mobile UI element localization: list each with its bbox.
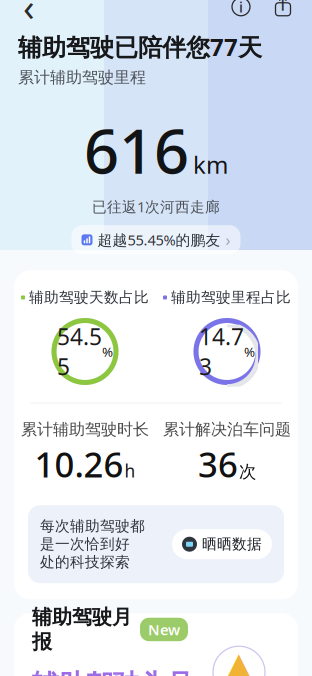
button[interactable]: Back: [12, 0, 46, 24]
staticText: ↑: [274, 0, 291, 15]
button[interactable]: 辅助驾驶月报: [0, 599, 312, 676]
staticText: 10.26: [34, 441, 123, 487]
staticText: 54.55: [57, 321, 102, 382]
staticText: 晒晒数据: [202, 535, 262, 553]
staticText: km: [193, 149, 228, 180]
staticText: New: [148, 620, 180, 639]
button[interactable]: Info: [224, 0, 258, 24]
staticText: ›: [225, 229, 230, 250]
staticText: 累计辅助驾驶里程: [18, 68, 146, 87]
staticText: 累计解决泊车问题: [163, 419, 291, 439]
button[interactable]: 超越55.45%的鹏友: [71, 225, 240, 254]
staticText: %: [244, 343, 255, 360]
staticText: 36: [198, 441, 238, 487]
staticText: 累计辅助驾驶时长: [21, 419, 149, 439]
staticText: 辅助驾驶月报: [32, 605, 132, 654]
staticText: i: [239, 0, 243, 16]
staticText: 次: [239, 461, 256, 482]
staticText: 辅助驾驶头号: [32, 668, 194, 676]
staticText: 616: [84, 109, 189, 191]
staticText: 辅助驾驶已陪伴您77天: [18, 31, 262, 63]
staticText: %: [102, 343, 113, 360]
staticText: 已往返1次河西走廊: [92, 197, 220, 216]
button[interactable]: Share: [266, 0, 300, 24]
staticText: ‹: [23, 0, 35, 32]
staticText: h: [124, 459, 135, 482]
staticText: 14.73: [199, 321, 244, 382]
staticText: 超越55.45%的鹏友: [97, 230, 220, 250]
staticText: ▲: [223, 643, 254, 676]
staticText: 辅助驾驶天数占比: [29, 288, 149, 306]
staticText: 辅助驾驶里程占比: [171, 288, 291, 306]
staticText: 每次辅助驾驶都是一次恰到好 处的科技探索: [40, 517, 145, 571]
button[interactable]: 晒晒数据: [172, 529, 272, 559]
